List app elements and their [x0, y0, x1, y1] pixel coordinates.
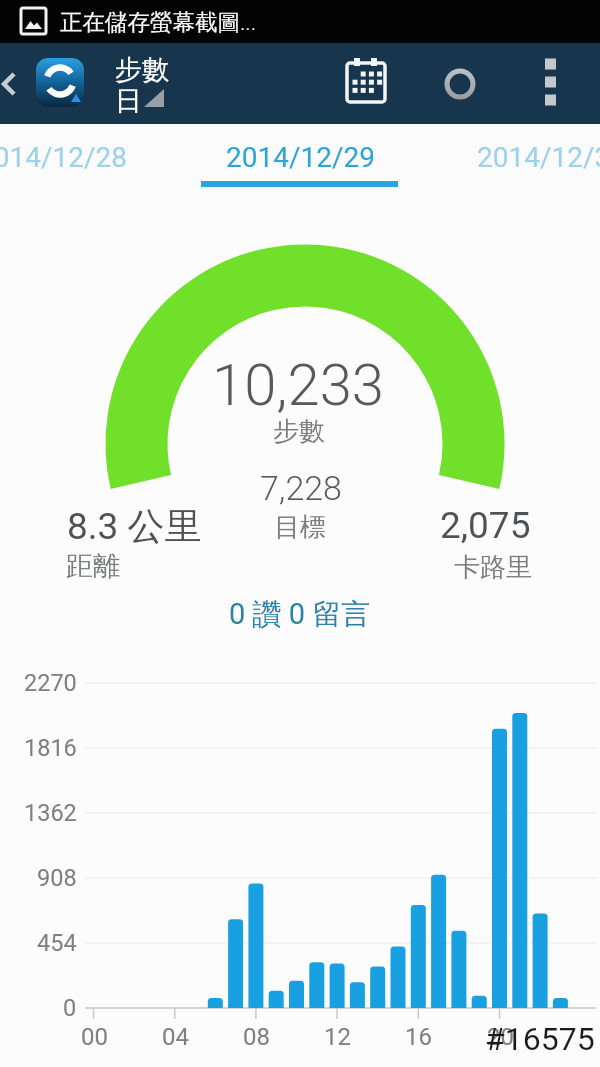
button[interactable]	[436, 60, 484, 108]
staticText: 908	[37, 864, 77, 892]
staticText: 距離	[66, 549, 120, 583]
staticText: 1362	[24, 799, 77, 827]
staticText: 2014/12/29	[226, 141, 375, 174]
button[interactable]	[190, 124, 410, 190]
staticText: 8.3 公里	[67, 503, 202, 550]
staticText: 日	[115, 84, 142, 118]
staticText: 正在儲存螢幕截圖...	[60, 8, 257, 36]
staticText: 2014/12/28	[0, 141, 127, 174]
button[interactable]	[532, 43, 568, 124]
staticText: 0	[63, 994, 77, 1022]
staticText: 目標	[274, 511, 326, 544]
staticText: 步數	[273, 415, 325, 448]
staticText: 04	[162, 1023, 189, 1051]
button[interactable]: 0 讚 0 留言	[210, 594, 390, 634]
button[interactable]	[340, 56, 392, 108]
button[interactable]	[460, 124, 600, 190]
staticText: 20	[487, 1023, 514, 1051]
staticText: 12	[324, 1023, 351, 1051]
staticText: 1816	[24, 734, 77, 762]
button[interactable]	[30, 43, 180, 124]
staticText: 2270	[24, 669, 77, 697]
staticText: 2,075	[440, 504, 531, 547]
staticText: 454	[37, 929, 77, 957]
staticText: 2014/12/30	[477, 141, 600, 174]
staticText: 0 讚 0 留言	[229, 596, 371, 633]
staticText: 00	[81, 1023, 108, 1051]
staticText: 16	[405, 1023, 432, 1051]
staticText: 08	[243, 1023, 270, 1051]
staticText: #16575	[485, 1020, 595, 1058]
staticText: 卡路里	[454, 551, 532, 584]
staticText: 7,228	[260, 468, 342, 508]
staticText: 10,233	[212, 351, 384, 419]
button[interactable]	[0, 124, 180, 190]
button[interactable]	[0, 43, 30, 124]
staticText: 步數	[115, 53, 169, 87]
